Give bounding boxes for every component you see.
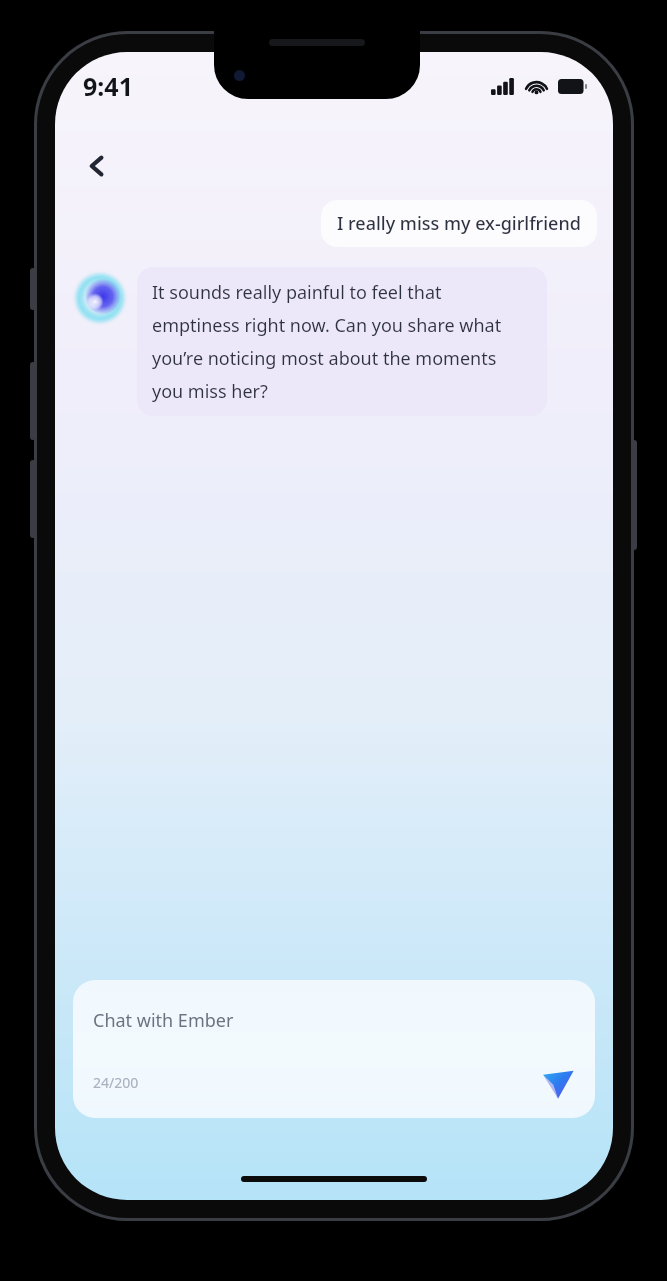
button[interactable]: Back [69,138,125,194]
staticText: It sounds really painful to feel that em… [152,280,532,403]
button[interactable]: Chat with Ember [73,980,595,1118]
button[interactable]: It sounds really painful to feel that em… [137,267,547,416]
staticText: 9:41 [83,69,133,103]
staticText: Chat with Ember [93,1008,234,1033]
staticText: 24/200 [93,1073,139,1092]
staticText: I really miss my ex-girlfriend [337,211,581,236]
button[interactable]: I really miss my ex-girlfriend [321,200,597,247]
button[interactable]: Send [531,1056,585,1110]
